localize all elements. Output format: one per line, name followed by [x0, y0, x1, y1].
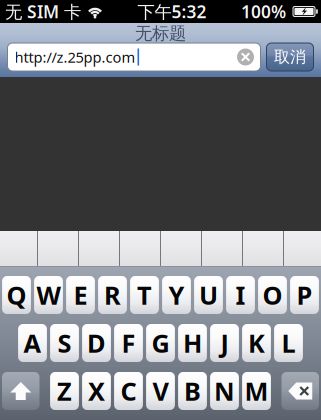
button[interactable]: Suggestion 4	[120, 231, 160, 267]
button[interactable]: D	[82, 324, 111, 362]
button[interactable]: Clear text	[233, 44, 257, 70]
button[interactable]: V	[146, 372, 175, 410]
button[interactable]: Suggestion 1	[0, 231, 37, 267]
button[interactable]: L	[274, 324, 303, 362]
button[interactable]: G	[146, 324, 175, 362]
button[interactable]: Suggestion 2	[38, 231, 78, 267]
staticText: D	[87, 326, 106, 360]
button[interactable]: Suggestion 8	[284, 231, 321, 267]
button[interactable]: W	[34, 276, 63, 314]
button[interactable]: X	[82, 372, 111, 410]
staticText: M	[244, 374, 268, 408]
button[interactable]: Suggestion 5	[161, 231, 201, 267]
staticText: U	[199, 278, 218, 312]
staticText: W	[36, 278, 60, 312]
staticText: Q	[6, 278, 26, 312]
staticText: X	[88, 374, 105, 408]
button[interactable]: K	[242, 324, 271, 362]
staticText: A	[23, 326, 41, 360]
button[interactable]: N	[210, 372, 239, 410]
staticText: http://z.25pp.com	[14, 47, 135, 67]
button[interactable]: B	[178, 372, 207, 410]
staticText: B	[184, 374, 201, 408]
button[interactable]: S	[50, 324, 79, 362]
staticText: H	[183, 326, 202, 360]
staticText: N	[214, 374, 235, 408]
button[interactable]: P	[290, 276, 319, 314]
button[interactable]: U	[194, 276, 223, 314]
button[interactable]: C	[114, 372, 143, 410]
staticText: 无 SIM 卡	[5, 0, 81, 23]
staticText: E	[73, 278, 87, 312]
button[interactable]: M	[242, 372, 271, 410]
staticText: O	[262, 278, 282, 312]
staticText: I	[235, 278, 245, 312]
staticText: K	[248, 326, 265, 360]
button[interactable]: Suggestion 3	[79, 231, 119, 267]
staticText: 取消	[274, 47, 306, 67]
staticText: C	[120, 374, 136, 408]
button[interactable]: Z	[50, 372, 79, 410]
button[interactable]: 取消	[266, 43, 313, 71]
button[interactable]: Suggestion 6	[202, 231, 242, 267]
staticText: 无标题	[135, 23, 186, 44]
button[interactable]: R	[98, 276, 127, 314]
staticText: Z	[57, 374, 72, 408]
button[interactable]: F	[114, 324, 143, 362]
staticText: 下午5:32	[137, 0, 206, 23]
button[interactable]: Suggestion 7	[243, 231, 283, 267]
staticText: L	[281, 326, 295, 360]
button[interactable]: Y	[162, 276, 191, 314]
button[interactable]: I	[226, 276, 255, 314]
button[interactable]: J	[210, 324, 239, 362]
staticText: S	[57, 326, 71, 360]
staticText: R	[104, 278, 121, 312]
button[interactable]: O	[258, 276, 287, 314]
staticText: J	[220, 326, 228, 360]
button[interactable]: A	[18, 324, 47, 362]
button[interactable]: E	[66, 276, 95, 314]
staticText: F	[121, 326, 135, 360]
staticText: T	[137, 278, 152, 312]
button[interactable]: H	[178, 324, 207, 362]
button[interactable]: Shift	[2, 372, 39, 410]
button[interactable]: Q	[2, 276, 31, 314]
staticText: G	[151, 326, 169, 360]
staticText: Y	[168, 278, 184, 312]
staticText: P	[296, 278, 312, 312]
button[interactable]: T	[130, 276, 159, 314]
button[interactable]: Delete	[281, 372, 319, 410]
staticText: 100%	[241, 0, 286, 23]
staticText: V	[152, 374, 168, 408]
button[interactable]: http://z.25pp.com	[7, 43, 260, 71]
